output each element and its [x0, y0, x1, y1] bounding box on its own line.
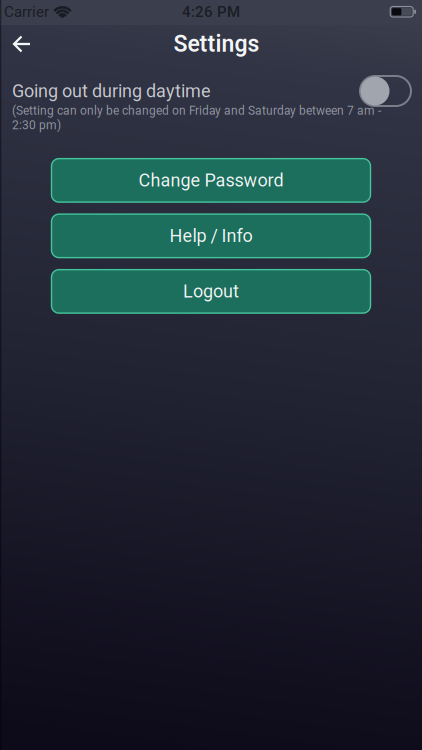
staticText: Help / Info — [169, 225, 252, 246]
button[interactable]: Back — [0, 35, 30, 52]
staticText: 4:26 PM — [182, 3, 240, 21]
button[interactable]: Help / Info — [51, 214, 370, 258]
staticText: Going out during daytime — [12, 80, 211, 102]
staticText: Carrier — [4, 3, 49, 21]
staticText: Settings — [173, 30, 259, 57]
button[interactable]: Logout — [51, 270, 370, 313]
button[interactable]: Going out during daytime — [360, 76, 411, 106]
staticText: Logout — [183, 281, 239, 302]
button[interactable]: Change Password — [51, 159, 370, 202]
staticText: (Setting can only be changed on Friday a… — [12, 103, 381, 132]
staticText: Change Password — [138, 170, 283, 191]
